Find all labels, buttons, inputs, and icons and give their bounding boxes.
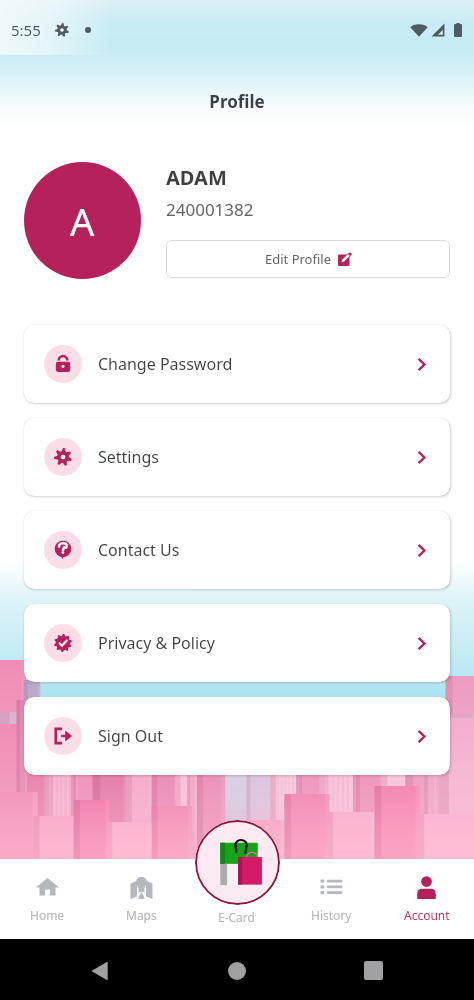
button[interactable]: E-Card — [195, 820, 280, 905]
staticText: Account — [404, 907, 450, 923]
button[interactable]: Contact Us — [24, 511, 450, 589]
button[interactable]: Privacy & Policy — [24, 604, 450, 682]
button[interactable]: Home — [228, 962, 246, 980]
button[interactable]: Change Password — [24, 325, 450, 403]
staticText: Profile — [0, 90, 474, 113]
staticText: Contact Us — [98, 539, 180, 561]
staticText: History — [311, 907, 352, 923]
staticText: Change Password — [98, 353, 233, 375]
staticText: Settings — [98, 446, 159, 468]
staticText: 240001382 — [166, 198, 254, 221]
button[interactable]: History — [284, 859, 379, 939]
button[interactable]: Maps — [94, 859, 189, 939]
button[interactable]: Recents — [364, 961, 383, 980]
button[interactable]: Edit Profile — [166, 240, 450, 278]
staticText: A — [70, 195, 95, 247]
staticText: Maps — [126, 907, 157, 923]
staticText: 5:55 — [11, 20, 41, 40]
button[interactable]: Account — [379, 859, 474, 939]
staticText: Privacy & Policy — [98, 632, 215, 654]
button[interactable]: Home — [0, 859, 94, 939]
staticText: Edit Profile — [265, 250, 332, 268]
button[interactable]: Back — [91, 961, 108, 981]
staticText: ADAM — [166, 164, 227, 191]
staticText: Home — [30, 907, 65, 923]
button[interactable]: Sign Out — [24, 697, 450, 775]
staticText: Sign Out — [98, 725, 163, 747]
staticText: E-Card — [218, 909, 255, 925]
button[interactable]: Settings — [24, 418, 450, 496]
